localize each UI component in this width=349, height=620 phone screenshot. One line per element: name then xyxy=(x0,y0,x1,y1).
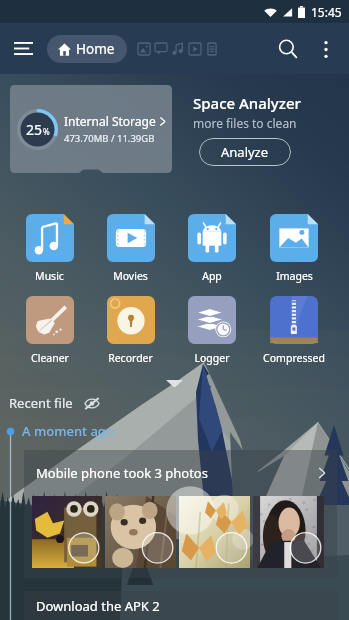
button[interactable]: Home xyxy=(47,35,127,63)
button[interactable]: Download the APK 2 xyxy=(24,591,337,620)
staticText: Recorder xyxy=(108,351,153,365)
staticText: Cleaner xyxy=(31,351,69,365)
staticText: A moment ago xyxy=(22,422,114,440)
button[interactable]: Videos xyxy=(186,37,203,61)
staticText: 15:45 xyxy=(311,4,342,20)
staticText: % xyxy=(43,126,50,137)
button[interactable]: More options xyxy=(314,37,338,61)
staticText: Internal Storage xyxy=(64,113,156,129)
button[interactable]: Logger xyxy=(171,296,253,365)
button[interactable]: Files xyxy=(203,37,220,61)
button[interactable]: Recorder xyxy=(90,296,171,365)
button[interactable]: Documents xyxy=(152,37,169,61)
staticText: Movies xyxy=(113,269,148,283)
staticText: Recent file xyxy=(9,394,73,412)
staticText: Music xyxy=(35,269,64,283)
button[interactable]: Search xyxy=(272,33,304,65)
button[interactable]: Hide recent files xyxy=(82,393,102,413)
staticText: Home xyxy=(76,40,115,58)
button[interactable]: Menu xyxy=(9,34,38,63)
button[interactable]: Compressed xyxy=(253,296,335,365)
staticText: Logger xyxy=(194,351,230,365)
button[interactable]: App xyxy=(171,214,253,283)
staticText: 25 xyxy=(26,120,43,139)
button[interactable]: Cleaner xyxy=(9,296,90,365)
staticText: App xyxy=(202,269,222,283)
staticText: Download the APK 2 xyxy=(36,597,160,615)
button[interactable]: Analyze xyxy=(199,138,291,166)
staticText: Analyze xyxy=(221,143,269,161)
button[interactable]: Music xyxy=(9,214,90,283)
button[interactable]: Movies xyxy=(90,214,171,283)
button[interactable]: Images xyxy=(253,214,335,283)
staticText: 473.70MB / 11.39GB xyxy=(64,132,155,145)
staticText: Mobile phone took 3 photos xyxy=(36,464,208,482)
staticText: more files to clean xyxy=(193,115,297,131)
button[interactable]: Music xyxy=(169,37,186,61)
button[interactable]: Mobile phone took 3 photos xyxy=(24,450,337,578)
staticText: Compressed xyxy=(263,351,325,365)
button[interactable]: Images xyxy=(135,37,152,61)
button[interactable]: 25 xyxy=(10,85,172,173)
staticText: Images xyxy=(276,269,313,283)
staticText: Space Analyzer xyxy=(193,93,301,113)
